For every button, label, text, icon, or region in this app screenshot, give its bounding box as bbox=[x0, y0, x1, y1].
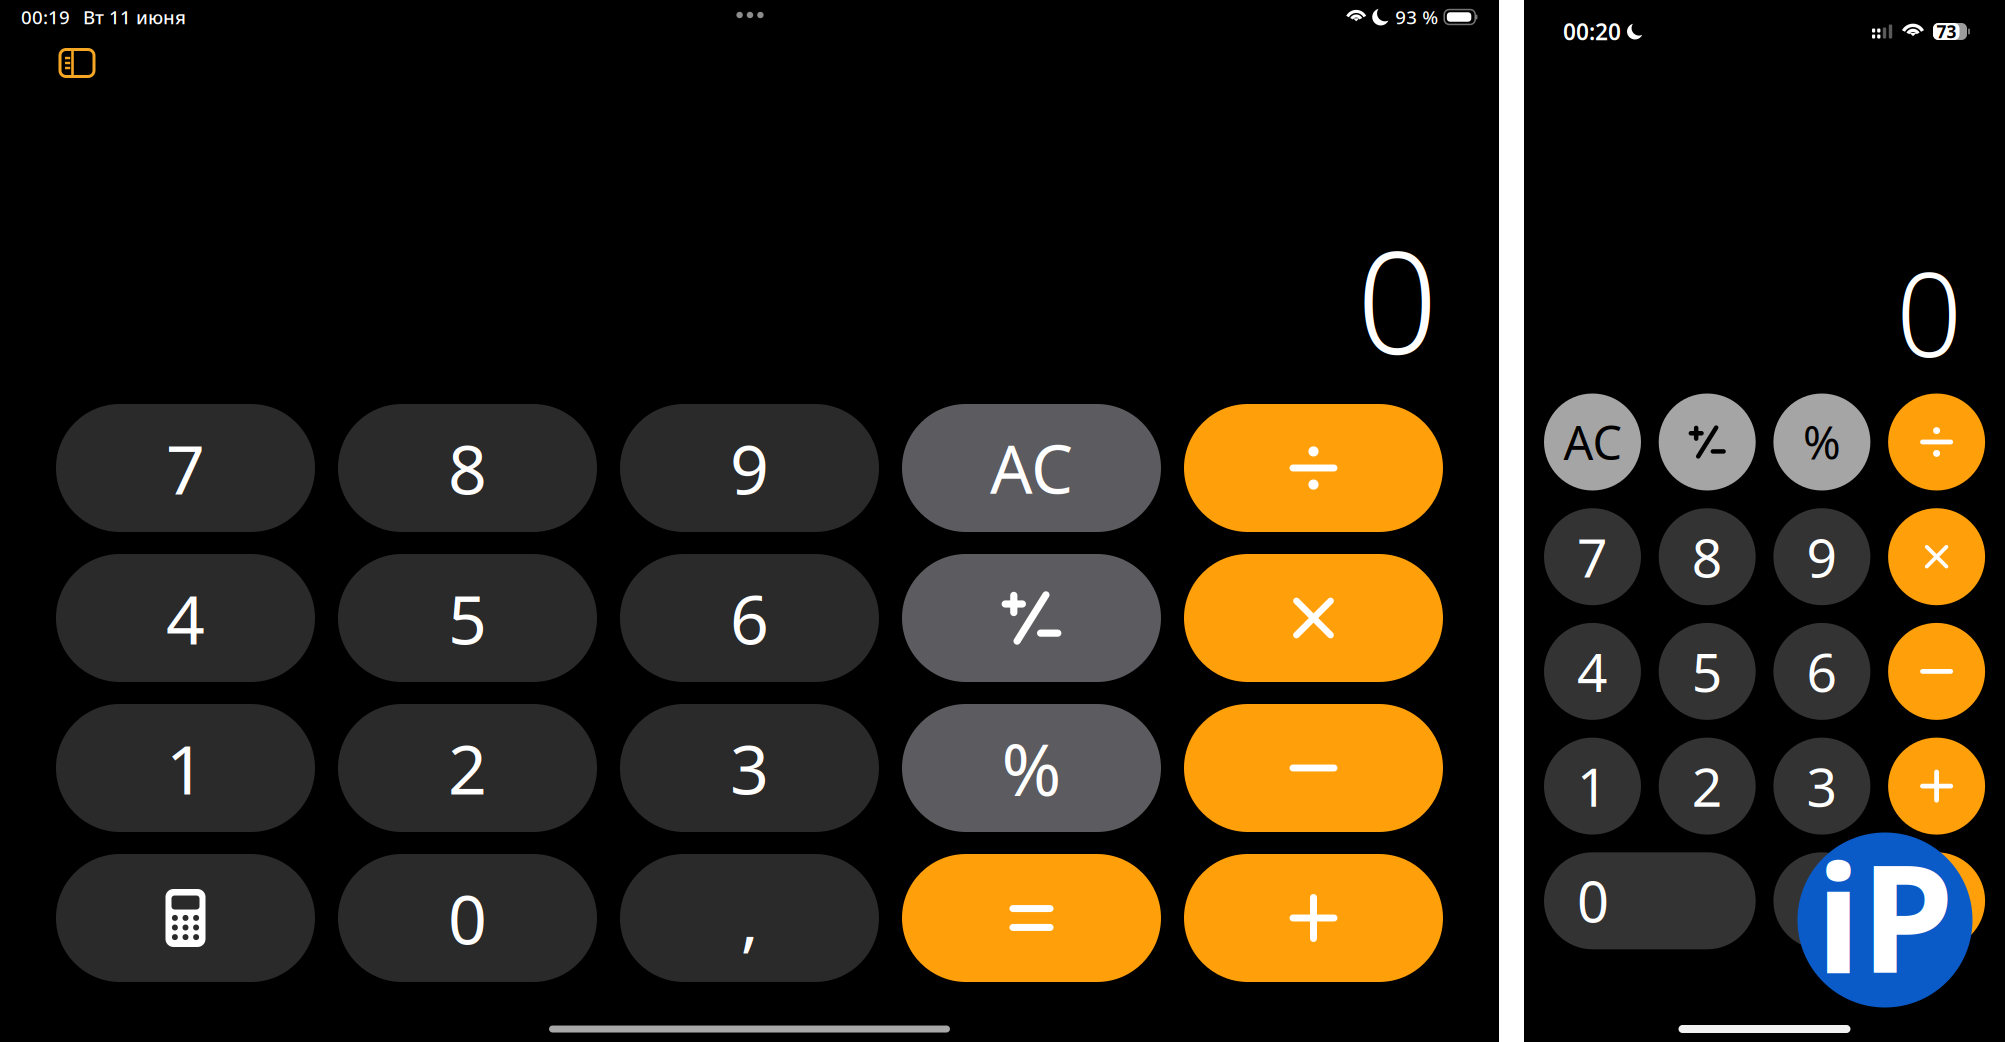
button[interactable]: Multiply bbox=[1888, 508, 1985, 605]
button[interactable]: 9 bbox=[1773, 508, 1870, 605]
button[interactable]: 5 bbox=[338, 554, 597, 682]
button[interactable]: Divide bbox=[1184, 404, 1443, 532]
button[interactable]: Add bbox=[1184, 854, 1443, 982]
button[interactable]: Equals bbox=[1888, 852, 1985, 949]
staticText: 2 bbox=[448, 723, 487, 813]
button[interactable]: Add bbox=[1888, 738, 1985, 835]
button[interactable]: 4 bbox=[1544, 623, 1641, 720]
button[interactable]: 7 bbox=[56, 404, 315, 532]
staticText: 1 bbox=[1577, 751, 1608, 821]
button[interactable]: 9 bbox=[620, 404, 879, 532]
staticText: 0 bbox=[448, 873, 487, 963]
staticText: 8 bbox=[448, 423, 487, 513]
button[interactable]: Decimal separator bbox=[1773, 852, 1870, 949]
staticText: 3 bbox=[1806, 751, 1837, 821]
button[interactable]: Percent bbox=[1773, 393, 1870, 490]
button[interactable]: 1 bbox=[1544, 738, 1641, 835]
button[interactable]: 3 bbox=[1773, 738, 1870, 835]
staticText: 4 bbox=[166, 573, 205, 663]
staticText: 3 bbox=[730, 723, 769, 813]
staticText: 00:20 bbox=[1563, 16, 1621, 46]
button[interactable]: 0 bbox=[338, 854, 597, 982]
button[interactable]: Divide bbox=[1888, 393, 1985, 490]
staticText: AC bbox=[1563, 411, 1621, 473]
button[interactable]: Multiply bbox=[1184, 554, 1443, 682]
staticText: 5 bbox=[1692, 636, 1723, 707]
button[interactable]: Plus Minus bbox=[902, 554, 1161, 682]
staticText: , bbox=[740, 873, 758, 963]
staticText: 9 bbox=[1806, 521, 1837, 592]
staticText: 7 bbox=[166, 423, 205, 513]
button[interactable]: 8 bbox=[1659, 508, 1756, 605]
button[interactable]: 4 bbox=[56, 554, 315, 682]
staticText: 9 bbox=[730, 423, 769, 513]
staticText: 5 bbox=[448, 573, 487, 663]
staticText: % bbox=[1001, 720, 1061, 816]
button[interactable]: 6 bbox=[1773, 623, 1870, 720]
staticText: 0 bbox=[1356, 204, 1437, 394]
button[interactable]: Equals bbox=[902, 854, 1161, 982]
staticText: Вт 11 июня bbox=[83, 5, 186, 29]
button[interactable]: 2 bbox=[338, 704, 597, 832]
button[interactable]: Decimal separator bbox=[620, 854, 879, 982]
button[interactable]: 1 bbox=[56, 704, 315, 832]
button[interactable]: Plus Minus bbox=[1659, 393, 1756, 490]
staticText: AC bbox=[990, 424, 1073, 512]
button[interactable]: 8 bbox=[338, 404, 597, 532]
button[interactable]: 5 bbox=[1659, 623, 1756, 720]
button[interactable]: 6 bbox=[620, 554, 879, 682]
button[interactable]: 0 bbox=[1544, 852, 1756, 949]
staticText: 73 bbox=[1936, 20, 1956, 43]
button[interactable]: 7 bbox=[1544, 508, 1641, 605]
staticText: iP bbox=[1816, 816, 1954, 1014]
button[interactable]: AC bbox=[902, 404, 1161, 532]
button[interactable]: All Clear bbox=[1544, 393, 1641, 490]
staticText: 6 bbox=[730, 573, 769, 663]
button[interactable]: Subtract bbox=[1888, 623, 1985, 720]
staticText: 0 bbox=[1577, 864, 1609, 938]
button[interactable]: 3 bbox=[620, 704, 879, 832]
button[interactable]: Subtract bbox=[1184, 704, 1443, 832]
staticText: , bbox=[1815, 865, 1829, 936]
button[interactable]: Show Sidebar bbox=[60, 49, 94, 76]
button[interactable]: Keypad bbox=[56, 854, 315, 982]
staticText: 93 % bbox=[1395, 5, 1438, 29]
staticText: 7 bbox=[1577, 521, 1608, 592]
button[interactable]: Percent bbox=[902, 704, 1161, 832]
staticText: 4 bbox=[1577, 636, 1608, 707]
staticText: % bbox=[1803, 412, 1841, 472]
staticText: 8 bbox=[1692, 521, 1723, 592]
staticText: 6 bbox=[1806, 636, 1837, 707]
staticText: 2 bbox=[1692, 751, 1723, 821]
button[interactable]: Multitasking Controls bbox=[736, 10, 764, 20]
button[interactable]: 2 bbox=[1659, 738, 1756, 835]
staticText: 0 bbox=[1896, 235, 1962, 389]
staticText: 1 bbox=[166, 723, 205, 813]
staticText: 00:19 bbox=[21, 5, 70, 29]
